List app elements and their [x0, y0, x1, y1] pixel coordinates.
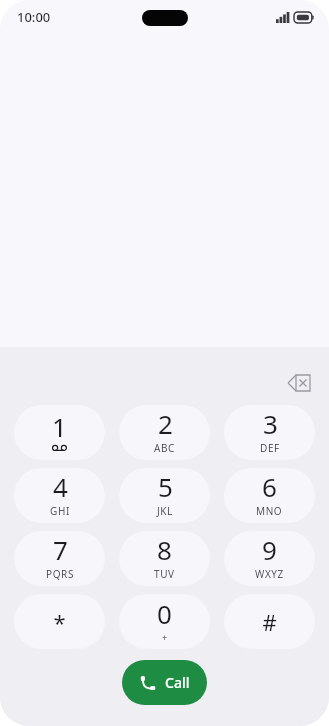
staticText: TUV	[154, 567, 175, 581]
staticText: #	[262, 607, 277, 637]
button[interactable]: #	[224, 594, 315, 649]
button[interactable]: 6	[224, 468, 315, 523]
staticText: Call	[165, 673, 190, 692]
staticText: 10:00	[17, 8, 51, 26]
staticText: GHI	[50, 504, 70, 518]
button[interactable]: 1	[14, 405, 105, 460]
button[interactable]: 8	[119, 531, 210, 586]
staticText: PQRS	[46, 567, 74, 581]
button[interactable]: 9	[224, 531, 315, 586]
button[interactable]: Backspace	[277, 361, 321, 405]
button[interactable]: 7	[14, 531, 105, 586]
staticText: *	[53, 607, 66, 637]
staticText: JKL	[157, 504, 173, 518]
staticText: 7	[53, 532, 68, 567]
button[interactable]: Call	[122, 660, 207, 705]
button[interactable]: 2	[119, 405, 210, 460]
button[interactable]: 4	[14, 468, 105, 523]
staticText: MNO	[256, 504, 283, 518]
staticText: 5	[158, 469, 173, 504]
staticText: 0	[157, 596, 172, 631]
staticText: 8	[157, 532, 172, 567]
staticText: 6	[262, 469, 277, 504]
staticText: ABC	[154, 441, 176, 455]
staticText: WXYZ	[255, 567, 284, 581]
staticText: 4	[53, 469, 68, 504]
staticText: 3	[263, 406, 278, 441]
button[interactable]: 5	[119, 468, 210, 523]
staticText: 9	[262, 532, 277, 567]
staticText: 1	[52, 409, 67, 444]
staticText: DEF	[260, 441, 280, 455]
staticText: +	[162, 631, 168, 643]
staticText: 2	[158, 406, 173, 441]
button[interactable]: *	[14, 594, 105, 649]
button[interactable]: 3	[224, 405, 315, 460]
button[interactable]: 0	[119, 594, 210, 649]
